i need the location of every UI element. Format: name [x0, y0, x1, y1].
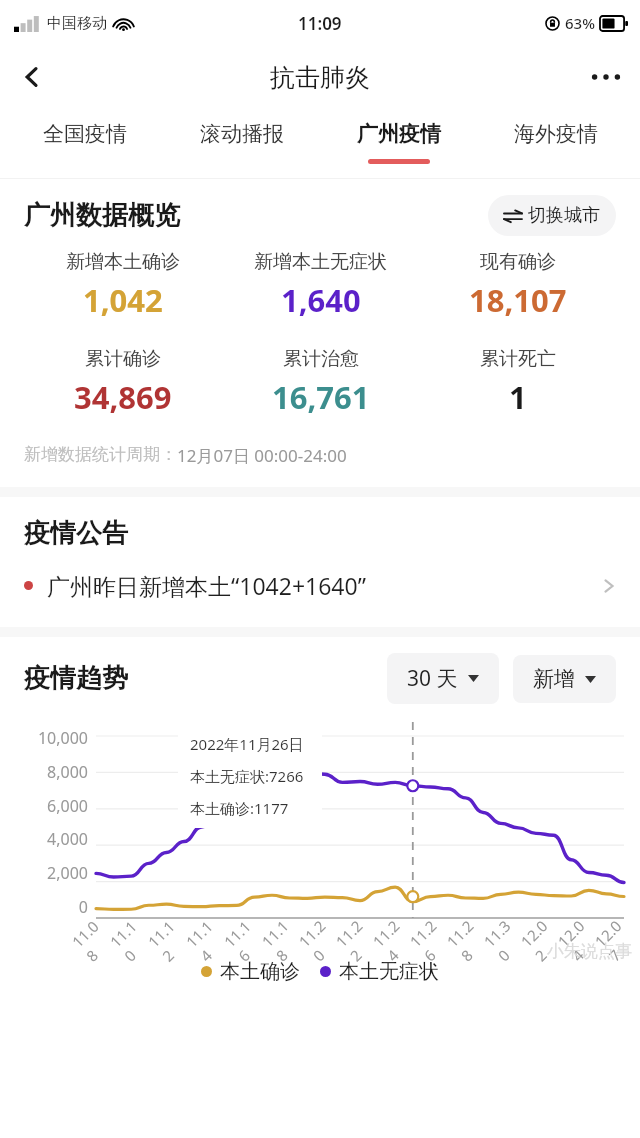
- staticText: 1,640: [281, 279, 361, 321]
- button[interactable]: Back: [8, 53, 56, 101]
- staticText: 疫情趋势: [24, 662, 128, 695]
- staticText: 11.30: [479, 911, 534, 965]
- staticText: 滚动播报: [200, 121, 284, 147]
- staticText: 切换城市: [528, 204, 600, 227]
- staticText: 广州数据概览: [24, 199, 180, 232]
- staticText: 广州昨日新增本土“1042+1640”: [47, 570, 366, 601]
- staticText: 0: [78, 896, 88, 918]
- staticText: 4,000: [47, 828, 88, 850]
- staticText: 疫情公告: [24, 517, 128, 550]
- staticText: 全国疫情: [43, 121, 127, 147]
- staticText: 新增本土无症状: [254, 250, 387, 274]
- button[interactable]: 广州疫情: [320, 108, 477, 178]
- button[interactable]: More options: [582, 53, 630, 101]
- staticText: 18,107: [469, 279, 567, 321]
- staticText: 16,761: [272, 376, 370, 418]
- button[interactable]: 累计确诊: [24, 347, 222, 418]
- staticText: 34,869: [74, 376, 172, 418]
- button[interactable]: 切换城市: [488, 195, 616, 236]
- staticText: 2,000: [47, 862, 88, 884]
- button[interactable]: 海外疫情: [477, 108, 634, 178]
- button[interactable]: 广州昨日新增本土“1042+1640”: [24, 570, 616, 601]
- staticText: 12.02: [516, 911, 571, 965]
- button[interactable]: 新增本土无症状: [222, 250, 419, 321]
- staticText: 1: [509, 376, 527, 418]
- staticText: 1,042: [83, 279, 163, 321]
- staticText: 中国移动: [47, 14, 107, 33]
- staticText: 11.18: [257, 911, 312, 965]
- staticText: 12月07日 00:00-24:00: [177, 444, 347, 467]
- staticText: 本土确诊:1177: [190, 798, 289, 818]
- staticText: 小朱说点事: [547, 941, 632, 962]
- staticText: 累计治愈: [283, 347, 359, 371]
- button[interactable]: 全国疫情: [6, 108, 163, 178]
- staticText: 抗击肺炎: [270, 62, 370, 93]
- staticText: 新增: [533, 666, 575, 692]
- staticText: 广州疫情: [357, 121, 441, 147]
- staticText: 累计死亡: [480, 347, 556, 371]
- button[interactable]: 累计死亡: [419, 347, 616, 418]
- staticText: 2022年11月26日: [190, 734, 304, 754]
- staticText: 本土无症状:7266: [190, 766, 304, 786]
- button[interactable]: 现有确诊: [419, 250, 616, 321]
- staticText: 11.20: [294, 911, 349, 965]
- staticText: 11.28: [442, 911, 497, 965]
- button[interactable]: 新增: [513, 655, 616, 703]
- staticText: 12.04: [553, 911, 608, 965]
- staticText: 新增数据统计周期：: [24, 444, 177, 465]
- staticText: 12.07: [590, 911, 640, 965]
- staticText: 8,000: [47, 761, 88, 783]
- staticText: 本土无症状: [339, 959, 439, 984]
- staticText: 累计确诊: [85, 347, 161, 371]
- staticText: 新增本土确诊: [66, 250, 180, 274]
- staticText: 海外疫情: [514, 121, 598, 147]
- staticText: 6,000: [47, 795, 88, 817]
- button[interactable]: 累计治愈: [222, 347, 419, 418]
- staticText: 11:09: [298, 12, 342, 35]
- staticText: 11.16: [219, 910, 275, 966]
- staticText: 11.26: [405, 911, 460, 965]
- staticText: 11.10: [105, 910, 161, 966]
- staticText: 63%: [565, 13, 595, 33]
- staticText: 现有确诊: [480, 250, 556, 274]
- button[interactable]: 30 天: [387, 653, 499, 704]
- button[interactable]: 滚动播报: [163, 108, 320, 178]
- staticText: 11.08: [67, 910, 123, 966]
- staticText: 30 天: [407, 664, 458, 693]
- staticText: 本土确诊: [220, 959, 300, 984]
- staticText: 11.14: [181, 910, 237, 966]
- staticText: 11.22: [331, 911, 386, 965]
- button[interactable]: 新增本土确诊: [24, 250, 222, 321]
- staticText: 10,000: [37, 727, 88, 749]
- staticText: 11.24: [368, 911, 423, 965]
- staticText: 11.12: [143, 910, 199, 966]
